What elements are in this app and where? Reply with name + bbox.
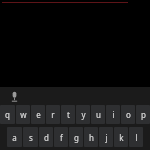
staticText: t (67, 109, 70, 120)
staticText: g (74, 132, 79, 143)
staticText: j (105, 132, 108, 143)
staticText: r (51, 109, 55, 120)
staticText: d (44, 132, 49, 143)
button[interactable]: q (0, 105, 15, 124)
staticText: a (12, 132, 17, 143)
staticText: i (112, 109, 115, 120)
staticText: k (119, 132, 124, 143)
button[interactable]: w (16, 105, 30, 124)
staticText: u (96, 109, 101, 120)
button[interactable]: s (23, 127, 38, 147)
button[interactable]: o (121, 105, 135, 124)
button[interactable]: e (31, 105, 45, 124)
button[interactable]: p (136, 105, 150, 124)
button[interactable]: l (129, 127, 143, 147)
button[interactable]: u (91, 105, 105, 124)
staticText: h (89, 132, 94, 143)
button[interactable]: j (99, 127, 113, 147)
staticText: s (29, 132, 33, 143)
staticText: e (36, 109, 41, 120)
button[interactable]: t (61, 105, 75, 124)
button[interactable]: y (76, 105, 90, 124)
button[interactable]: r (46, 105, 60, 124)
staticText: l (135, 132, 138, 143)
staticText: f (60, 132, 63, 143)
button[interactable]: g (69, 127, 83, 147)
button[interactable]: h (84, 127, 98, 147)
button[interactable]: i (106, 105, 120, 124)
staticText: w (20, 109, 27, 120)
staticText: p (141, 109, 146, 120)
staticText: y (81, 109, 86, 120)
button[interactable]: Voice input (6, 88, 22, 104)
button[interactable]: f (54, 127, 68, 147)
button[interactable]: k (114, 127, 128, 147)
button[interactable]: d (39, 127, 53, 147)
staticText: q (5, 109, 10, 120)
button[interactable]: a (7, 127, 22, 147)
staticText: o (126, 109, 131, 120)
